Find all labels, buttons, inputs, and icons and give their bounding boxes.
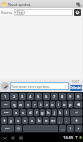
staticText: u [51, 102, 54, 107]
button[interactable]: 1 [1, 93, 9, 100]
button[interactable]: f [34, 109, 39, 116]
staticText: ?123 [5, 127, 10, 130]
button[interactable]: 5 [35, 93, 42, 100]
button[interactable]: z [44, 101, 49, 108]
button[interactable]: Shift [71, 117, 82, 124]
button[interactable]: a [13, 109, 19, 116]
button[interactable]: h [46, 109, 51, 116]
staticText: . [62, 126, 64, 131]
staticText: a [15, 110, 18, 115]
button[interactable]: e [25, 101, 31, 108]
button[interactable]: o [62, 101, 67, 108]
staticText: g [41, 110, 44, 115]
button[interactable]: c [22, 117, 28, 124]
staticText: t [40, 102, 42, 107]
button[interactable]: j [52, 109, 57, 116]
staticText: n [45, 118, 48, 123]
staticText: y [10, 118, 13, 123]
button[interactable]: v [29, 117, 35, 124]
staticText: 160/1 [72, 80, 80, 84]
button[interactable]: k [58, 109, 63, 116]
staticText: 3 [21, 94, 24, 99]
staticText: 13:55 [63, 135, 74, 140]
button[interactable]: g [40, 109, 45, 116]
button[interactable]: Tab [1, 101, 10, 108]
button[interactable]: 4 [27, 93, 34, 100]
button[interactable]: 9 [67, 93, 74, 100]
staticText: . [66, 118, 68, 123]
button[interactable]: d [27, 109, 33, 116]
staticText: Odeslat [70, 86, 82, 90]
button[interactable]: Change keyboard [15, 125, 22, 132]
staticText: q [13, 102, 16, 107]
button[interactable]: Voice input [67, 125, 74, 132]
button[interactable]: Textovat sem zprávu [10, 82, 69, 90]
staticText: f [36, 110, 38, 115]
staticText: p [69, 102, 72, 107]
button[interactable]: Petr [14, 9, 73, 16]
staticText: c [24, 118, 26, 123]
button[interactable]: m [50, 117, 56, 124]
staticText: 8 [61, 94, 64, 99]
button[interactable]: x [15, 117, 21, 124]
button[interactable]: q [11, 101, 17, 108]
button[interactable]: Pick contact [74, 9, 81, 16]
staticText: h [47, 110, 50, 115]
staticText: Textovat sem zprávu [11, 84, 50, 89]
button[interactable]: t [38, 101, 43, 108]
staticText: , [59, 118, 61, 123]
staticText: w [19, 102, 23, 107]
button[interactable]: 3 [19, 93, 26, 100]
staticText: 1 [4, 94, 7, 99]
button[interactable]: y [8, 117, 14, 124]
button[interactable]: b [36, 117, 42, 124]
staticText: 7 [53, 94, 56, 99]
button[interactable]: Attach [1, 82, 9, 90]
button[interactable]: . [59, 125, 66, 132]
staticText: i [58, 102, 60, 107]
button[interactable]: 7 [51, 93, 58, 100]
staticText: o [63, 102, 66, 107]
staticText: v [31, 118, 34, 123]
button[interactable]: l [64, 109, 69, 116]
staticText: Nová zpráva [8, 2, 31, 7]
button[interactable]: n [43, 117, 49, 124]
button[interactable]: 2 [10, 93, 18, 100]
staticText: z [46, 102, 48, 107]
button[interactable]: , [57, 117, 63, 124]
button[interactable]: i [56, 101, 61, 108]
button[interactable]: r [32, 101, 37, 108]
staticText: 0 [77, 94, 80, 99]
staticText: Tab [4, 103, 8, 106]
button[interactable]: s [20, 109, 26, 116]
button[interactable]: 0 [75, 93, 82, 100]
staticText: Caps [4, 111, 9, 114]
button[interactable]: u [50, 101, 55, 108]
button[interactable]: 8 [59, 93, 66, 100]
button[interactable]: p [68, 101, 73, 108]
button[interactable]: Hide keyboard [75, 125, 82, 132]
staticText: l [66, 110, 68, 115]
button[interactable]: Home [9, 134, 17, 142]
button[interactable]: Back [1, 134, 9, 142]
staticText: 5 [37, 94, 40, 99]
staticText: k [59, 110, 62, 115]
button[interactable]: Caps [1, 109, 12, 116]
button[interactable]: 6 [43, 93, 50, 100]
staticText: Petr [17, 11, 24, 15]
staticText: 6 [45, 94, 48, 99]
button[interactable]: Recent apps [17, 134, 25, 142]
staticText: d [29, 110, 32, 115]
button[interactable]: Odeslat [70, 85, 82, 91]
button[interactable]: w [18, 101, 24, 108]
button[interactable]: Enter [70, 109, 82, 116]
button[interactable]: Shift [1, 117, 7, 124]
staticText: r [34, 102, 36, 107]
button[interactable]: . [64, 117, 70, 124]
staticText: j [54, 110, 56, 115]
button[interactable]: Backspace [74, 101, 82, 108]
staticText: 9 [69, 94, 72, 99]
button[interactable]: Send message [74, 0, 82, 8]
button[interactable]: ?123 [1, 125, 14, 132]
